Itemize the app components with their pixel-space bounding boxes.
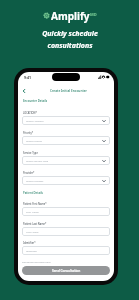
staticText: Provider* (23, 171, 35, 174)
staticText: Create Initial Encounter (50, 89, 87, 93)
button[interactable]: Last Name (22, 227, 110, 236)
staticText: LOCATION* (23, 111, 37, 114)
button[interactable]: First Name (22, 207, 110, 216)
staticText: Identifier (26, 249, 37, 252)
staticText: Select Priority (26, 139, 43, 142)
staticText: Amplify (51, 9, 90, 23)
button[interactable]: Identifier (22, 246, 110, 255)
staticText: Disclaimer text goes here (22, 260, 51, 263)
staticText: Send Consultation (52, 269, 81, 273)
staticText: Select Provider (26, 179, 44, 182)
button[interactable]: Select Location (22, 116, 110, 125)
staticText: Identifier* (23, 241, 36, 244)
button[interactable]: Select Provider (22, 176, 110, 185)
button[interactable]: Select Priority (22, 136, 110, 145)
button[interactable]: Select Service Type (22, 156, 110, 165)
button[interactable]: Send Consultation (22, 266, 110, 275)
staticText: Patient Details (23, 191, 43, 195)
staticText: Quickly schedule consultations (42, 29, 98, 50)
staticText: Encounter Details (23, 99, 48, 103)
staticText: Priority* (23, 131, 34, 134)
staticText: Service Type (23, 151, 38, 154)
staticText: First Name (26, 210, 39, 213)
button[interactable]: Back (18, 85, 29, 96)
staticText: Patient First Name* (23, 202, 47, 205)
staticText: Patient Last Name* (23, 222, 47, 225)
staticText: Select Service Type (26, 159, 49, 162)
staticText: MD (90, 12, 97, 17)
staticText: Select Location (26, 119, 44, 122)
staticText: 9:41 (24, 75, 31, 80)
staticText: Last Name (26, 230, 39, 233)
